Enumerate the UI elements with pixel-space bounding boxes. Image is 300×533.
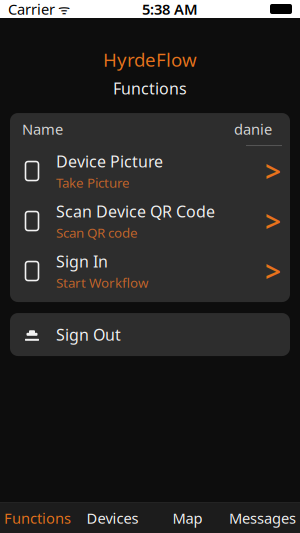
staticText: Sign In <box>56 251 108 272</box>
staticText: Functions <box>4 508 71 528</box>
staticText: Scan Device QR Code <box>56 201 215 222</box>
staticText: > <box>265 202 281 240</box>
button[interactable]: Sign In <box>10 246 290 296</box>
button[interactable]: Map <box>150 503 225 533</box>
staticText: Functions <box>113 78 187 99</box>
button[interactable]: Sign Out <box>10 313 290 356</box>
staticText: HyrdeFlow <box>103 47 197 72</box>
button[interactable]: Device Picture <box>10 146 290 196</box>
staticText: Name <box>22 119 63 139</box>
staticText: Start Workflow <box>56 274 148 291</box>
staticText: > <box>265 252 281 290</box>
staticText: Map <box>172 508 202 528</box>
staticText: Devices <box>86 508 138 528</box>
button[interactable]: Messages <box>225 503 300 533</box>
staticText: Messages <box>229 508 296 528</box>
staticText: 5:38 AM <box>142 0 198 19</box>
button[interactable]: Devices <box>75 503 150 533</box>
staticText: > <box>265 152 281 190</box>
staticText: Sign Out <box>56 324 121 345</box>
staticText: Carrier <box>8 0 55 19</box>
staticText: Device Picture <box>56 151 163 172</box>
button[interactable]: Scan Device QR Code <box>10 196 290 246</box>
staticText: danie <box>234 119 272 139</box>
staticText: Scan QR code <box>56 224 138 241</box>
staticText: Take Picture <box>56 174 130 191</box>
staticText: ᯤ <box>55 0 70 18</box>
button[interactable]: Functions <box>0 503 75 533</box>
